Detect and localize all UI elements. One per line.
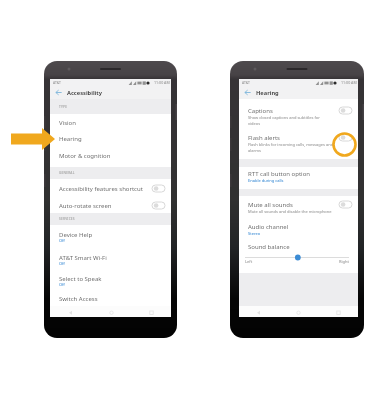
staticText: Mute all sounds bbox=[248, 201, 293, 209]
staticText: Hearing bbox=[256, 89, 279, 97]
staticText: alarms bbox=[248, 148, 261, 153]
button[interactable]: Back bbox=[243, 88, 252, 97]
button[interactable]: Recents bbox=[318, 306, 358, 317]
button[interactable]: Hearing bbox=[50, 131, 171, 147]
button[interactable]: Select to Speak bbox=[50, 269, 171, 292]
button[interactable]: Auto-rotate screen bbox=[50, 197, 171, 214]
button[interactable]: Device Help bbox=[50, 225, 171, 248]
staticText: Show closed captions and subtitles for bbox=[248, 115, 320, 120]
staticText: Off bbox=[59, 238, 65, 243]
staticText: AT&T Smart Wi-Fi bbox=[59, 254, 107, 262]
staticText: AT&T bbox=[242, 80, 250, 85]
staticText: Off bbox=[59, 282, 65, 287]
staticText: RTT call button option bbox=[248, 170, 310, 178]
staticText: Device Help bbox=[59, 231, 93, 239]
staticText: AT&T bbox=[53, 80, 61, 85]
staticText: Audio channel bbox=[248, 223, 289, 231]
button[interactable]: Recents bbox=[131, 306, 171, 317]
button[interactable]: Motor & cognition bbox=[50, 147, 171, 164]
staticText: Motor & cognition bbox=[59, 152, 111, 160]
staticText: Mute all sounds and disable the micropho… bbox=[248, 209, 332, 214]
staticText: SERVICES bbox=[59, 217, 75, 221]
staticText: Captions bbox=[248, 107, 273, 115]
staticText: Stereo bbox=[248, 231, 261, 236]
staticText: 11:00 AM bbox=[341, 80, 357, 85]
button[interactable]: RTT call button option bbox=[239, 167, 358, 183]
staticText: Sound balance bbox=[248, 243, 290, 251]
staticText: TYPE bbox=[59, 105, 68, 109]
button[interactable]: Flash alerts bbox=[239, 131, 358, 154]
button[interactable]: Audio channel bbox=[239, 220, 358, 236]
staticText: Right bbox=[339, 259, 349, 264]
staticText: videos bbox=[248, 121, 261, 126]
button[interactable]: AT&T Smart Wi-Fi bbox=[50, 248, 171, 269]
button[interactable]: Mute all sounds bbox=[239, 198, 358, 214]
button[interactable]: Captions bbox=[239, 104, 358, 127]
button[interactable]: Accessibility features shortcut bbox=[50, 180, 171, 197]
staticText: Accessibility features shortcut bbox=[59, 185, 152, 193]
staticText: 11:00 AM bbox=[154, 80, 170, 85]
staticText: Flash blinks for incoming calls, message… bbox=[248, 142, 334, 147]
staticText: Vision bbox=[59, 119, 76, 127]
button[interactable]: Back bbox=[54, 88, 63, 97]
staticText: Left bbox=[245, 259, 253, 264]
staticText: Switch Access bbox=[59, 295, 98, 303]
button[interactable]: Vision bbox=[50, 114, 171, 131]
staticText: Auto-rotate screen bbox=[59, 202, 152, 210]
staticText: GENERAL bbox=[59, 171, 75, 175]
staticText: Accessibility bbox=[67, 89, 103, 97]
staticText: Enable during calls bbox=[248, 178, 284, 183]
staticText: Off bbox=[59, 261, 65, 266]
staticText: Select to Speak bbox=[59, 275, 102, 283]
button[interactable]: Switch Access bbox=[50, 292, 171, 306]
staticText: Hearing bbox=[59, 135, 82, 143]
staticText: Flash alerts bbox=[248, 134, 280, 142]
